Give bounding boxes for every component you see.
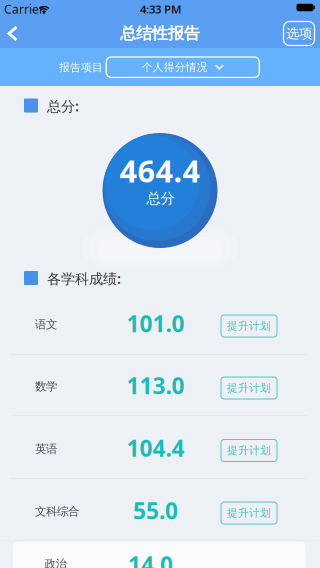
staticText: 英语 xyxy=(35,442,57,456)
staticText: 总分 xyxy=(146,189,174,207)
staticText: 总结性报告 xyxy=(120,23,200,44)
staticText: 选项 xyxy=(286,25,312,42)
button[interactable]: 提升计划 xyxy=(221,315,277,337)
button[interactable]: 个人得分情况 xyxy=(106,57,259,77)
button[interactable]: 提升计划 xyxy=(221,377,277,399)
staticText: 提升计划 xyxy=(227,319,271,332)
staticText: 总分: xyxy=(47,96,79,116)
staticText: Carrier xyxy=(4,1,44,17)
button[interactable]: Back xyxy=(2,20,24,46)
button[interactable]: 选项 xyxy=(283,21,314,45)
staticText: 464.4 xyxy=(119,150,200,191)
staticText: 个人得分情况 xyxy=(142,61,208,74)
staticText: 政治 xyxy=(44,557,66,568)
button[interactable]: 提升计划 xyxy=(221,502,277,524)
staticText: 报告项目 xyxy=(59,61,103,74)
staticText: 文科综合 xyxy=(35,504,79,519)
staticText: 数学 xyxy=(35,379,57,394)
staticText: 提升计划 xyxy=(227,381,271,394)
staticText: 语文 xyxy=(35,317,57,332)
staticText: 提升计划 xyxy=(227,444,271,457)
staticText: 104.4 xyxy=(126,433,184,463)
staticText: 14.0 xyxy=(128,549,173,568)
staticText: 101.0 xyxy=(126,308,184,338)
staticText: 113.0 xyxy=(126,370,184,400)
staticText: 4:33 PM xyxy=(140,1,182,17)
button[interactable]: 提升计划 xyxy=(221,439,277,461)
staticText: 提升计划 xyxy=(227,506,271,519)
staticText: 各学科成绩: xyxy=(47,269,121,288)
staticText: 55.0 xyxy=(133,495,178,525)
